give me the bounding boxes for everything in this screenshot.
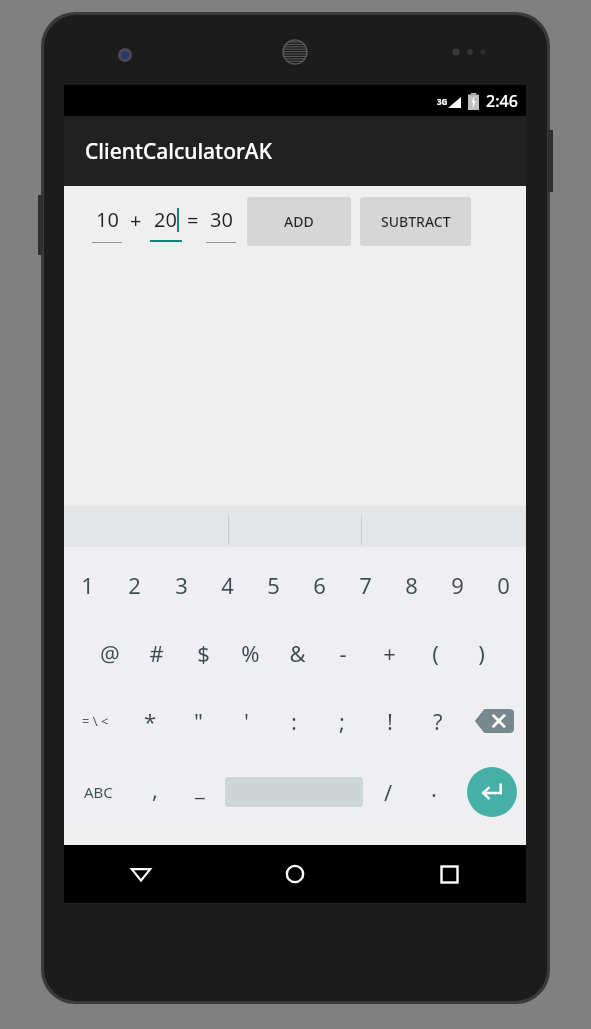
button[interactable]: / [365, 755, 411, 829]
staticText: / [384, 777, 393, 807]
button[interactable]: Home [218, 845, 372, 903]
staticText: 6 [313, 570, 326, 600]
staticText: + [130, 207, 142, 234]
button[interactable]: 9 [434, 551, 480, 619]
button[interactable]: @ [86, 619, 133, 687]
staticText: , [152, 774, 158, 804]
button[interactable]: _ [177, 755, 223, 829]
button[interactable]: ( [412, 619, 458, 687]
staticText: @ [100, 638, 120, 668]
staticText: ' [244, 706, 249, 736]
staticText: 3G [437, 96, 448, 107]
staticText: : [291, 706, 297, 736]
button[interactable]: 7 [342, 551, 388, 619]
staticText: ClientCalculatorAK [85, 137, 272, 166]
staticText: ) [478, 638, 485, 668]
staticText: 4 [221, 570, 234, 600]
staticText: " [194, 706, 203, 736]
button[interactable]: $ [180, 619, 227, 687]
button[interactable]: 6 [296, 551, 342, 619]
button[interactable]: & [274, 619, 320, 687]
button[interactable]: + [366, 619, 412, 687]
staticText: 2 [128, 570, 141, 600]
staticText: 5 [267, 570, 280, 600]
button[interactable]: * [127, 687, 174, 755]
button[interactable]: ; [318, 687, 366, 755]
button[interactable]: ' [222, 687, 270, 755]
button[interactable]: # [133, 619, 180, 687]
staticText: = [187, 207, 199, 234]
button[interactable]: SUBTRACT [360, 197, 471, 246]
staticText: 2:46 [486, 90, 518, 112]
button[interactable]: 0 [480, 551, 526, 619]
staticText: ( [432, 638, 439, 668]
staticText: ; [339, 706, 345, 736]
button[interactable]: % [227, 619, 274, 687]
button[interactable]: Space [223, 755, 365, 829]
staticText: 30 [210, 206, 233, 233]
staticText: ! [387, 706, 393, 736]
button[interactable]: 2 [111, 551, 158, 619]
staticText: ADD [284, 212, 314, 231]
button[interactable]: 3 [158, 551, 204, 619]
button[interactable]: ABC [64, 755, 132, 829]
button[interactable]: - [320, 619, 366, 687]
staticText: 0 [497, 570, 510, 600]
button[interactable]: ? [414, 687, 462, 755]
button[interactable]: 8 [388, 551, 434, 619]
button[interactable]: " [174, 687, 222, 755]
button[interactable]: 5 [250, 551, 296, 619]
staticText: $ [197, 638, 210, 668]
staticText: _ [195, 772, 205, 802]
staticText: # [149, 638, 164, 668]
staticText: 3 [175, 570, 188, 600]
staticText: SUBTRACT [381, 212, 451, 231]
button[interactable]: Back [64, 845, 218, 903]
staticText: - [339, 638, 347, 668]
staticText: * [144, 706, 157, 736]
button[interactable]: 1 [64, 551, 111, 619]
button[interactable]: Enter [457, 755, 526, 829]
button[interactable]: 4 [204, 551, 250, 619]
button[interactable]: ! [366, 687, 414, 755]
staticText: & [289, 638, 306, 668]
button[interactable]: Backspace [462, 687, 526, 755]
button[interactable]: Recent apps [372, 845, 526, 903]
button[interactable]: . [411, 755, 457, 829]
staticText: 8 [405, 570, 418, 600]
staticText: = \ < [82, 712, 109, 730]
button[interactable]: , [132, 755, 177, 829]
staticText: 10 [96, 206, 119, 233]
button[interactable]: ) [458, 619, 504, 687]
staticText: 1 [81, 570, 94, 600]
button[interactable]: : [270, 687, 318, 755]
button[interactable]: ADD [247, 197, 351, 246]
staticText: 9 [451, 570, 464, 600]
staticText: % [241, 638, 260, 668]
staticText: ABC [84, 782, 113, 802]
staticText: 7 [359, 570, 372, 600]
button[interactable]: = \ < [64, 687, 127, 755]
staticText: 20 [154, 206, 177, 233]
staticText: . [431, 773, 437, 803]
staticText: ? [433, 706, 443, 736]
staticText: + [383, 638, 396, 668]
